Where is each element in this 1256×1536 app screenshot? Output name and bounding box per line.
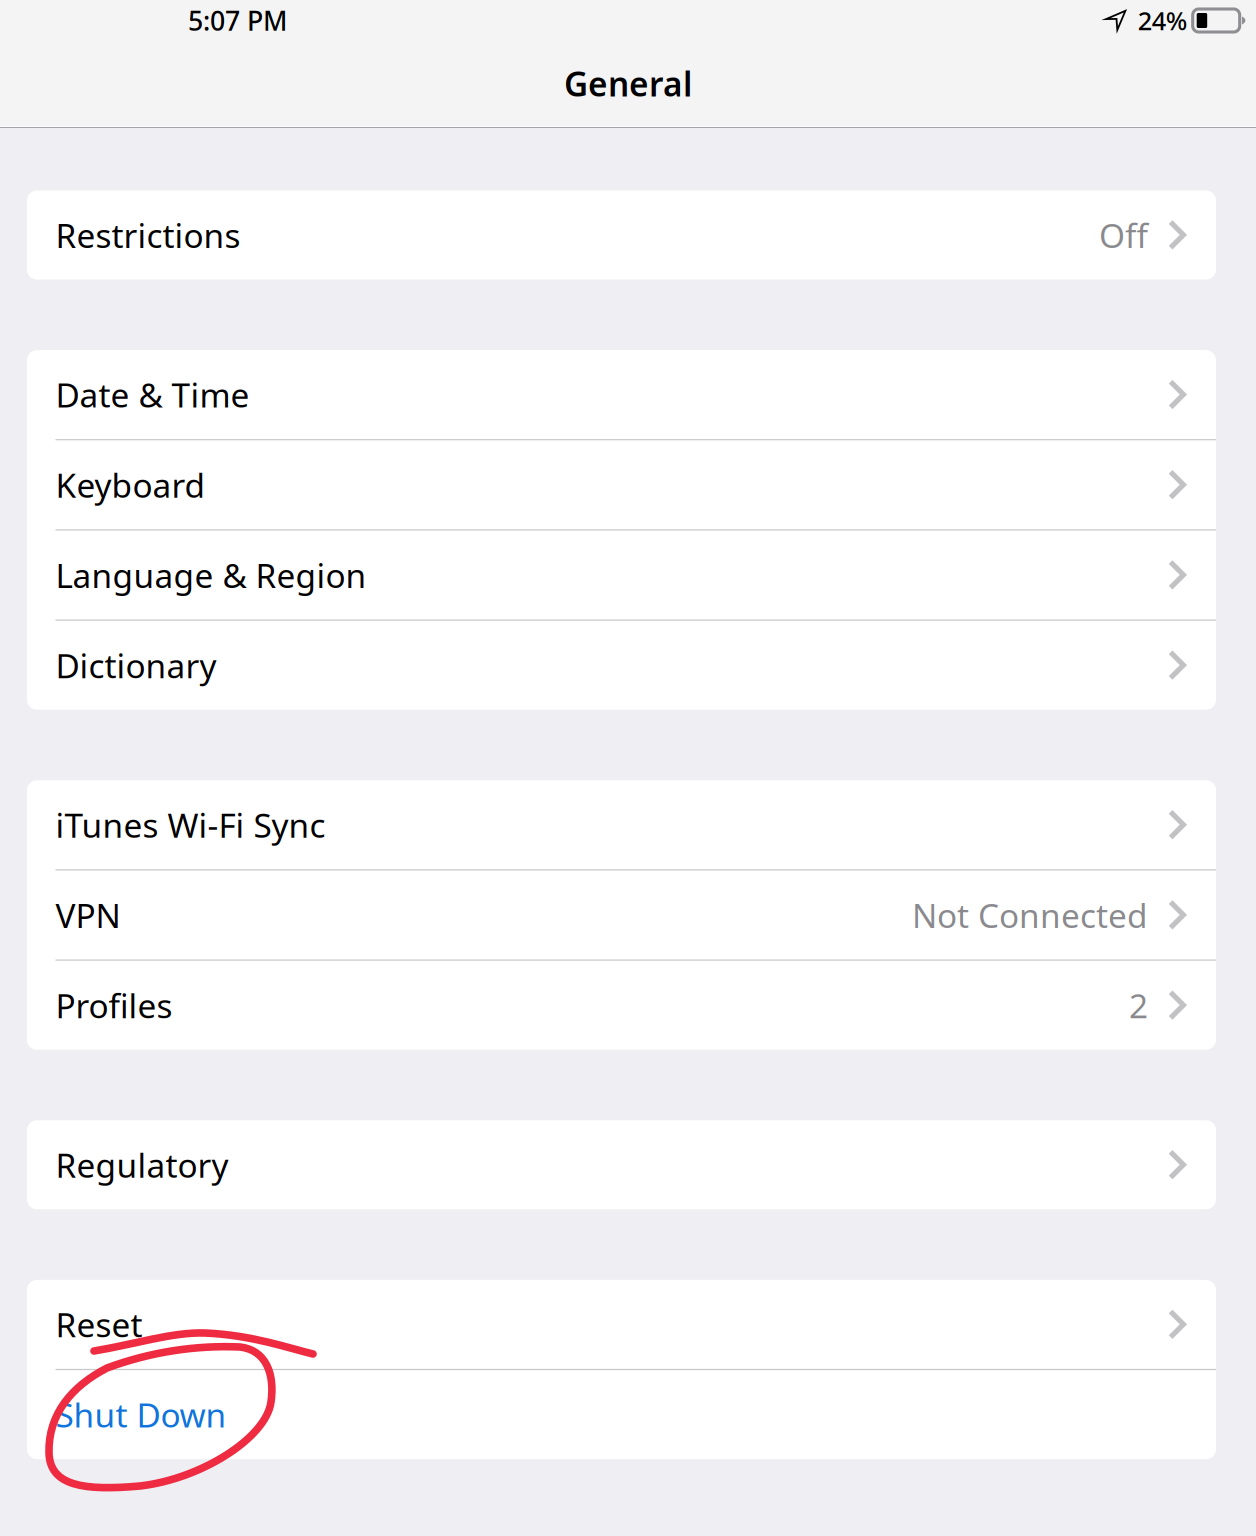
button[interactable]: Shut Down [27, 1370, 1216, 1459]
staticText: Language & Region [55, 553, 366, 597]
button[interactable]: Reset [27, 1280, 1216, 1369]
staticText: Profiles [55, 983, 172, 1027]
staticText: Keyboard [55, 463, 205, 507]
button[interactable]: Restrictions [27, 190, 1216, 279]
button[interactable]: Date & Time [27, 350, 1216, 439]
staticText: Off [1099, 213, 1148, 257]
staticText: Date & Time [55, 372, 249, 417]
staticText: Regulatory [55, 1143, 228, 1187]
staticText: Shut Down [55, 1392, 226, 1437]
button[interactable]: Dictionary [27, 621, 1216, 710]
button[interactable]: Language & Region [27, 530, 1216, 619]
staticText: VPN [55, 893, 120, 937]
staticText: Restrictions [55, 213, 240, 257]
staticText: Reset [55, 1302, 142, 1347]
staticText: iTunes Wi-Fi Sync [55, 803, 325, 847]
button[interactable]: VPN [27, 870, 1216, 959]
staticText: 2 [1129, 983, 1148, 1027]
button[interactable]: iTunes Wi-Fi Sync [27, 780, 1216, 869]
staticText: General [564, 61, 692, 106]
staticText: Dictionary [55, 643, 216, 687]
button[interactable]: Regulatory [27, 1120, 1216, 1209]
button[interactable]: Keyboard [27, 440, 1216, 529]
button[interactable]: Profiles [27, 961, 1216, 1050]
staticText: Not Connected [912, 893, 1148, 937]
staticText: 5:07 PM [188, 3, 287, 38]
staticText: 24% [1138, 4, 1188, 37]
